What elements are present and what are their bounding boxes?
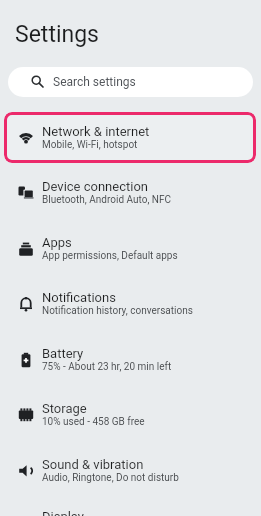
staticText: Audio, Ringtone, Do not disturb [42,472,179,484]
staticText: 75% - About 23 hr, 20 min left [42,361,172,373]
button[interactable]: Search settings [8,67,253,97]
staticText: Network & internet [42,124,150,139]
staticText: Apps [42,235,72,250]
button[interactable]: Notifications [0,278,261,329]
button[interactable]: Apps [0,223,261,274]
staticText: Settings [15,21,99,48]
staticText: Search settings [53,75,136,89]
button[interactable]: Storage [0,389,261,440]
staticText: Notifications [42,290,116,305]
button[interactable]: Sound & vibration [0,445,261,496]
staticText: Mobile, Wi-Fi, hotspot [42,139,138,151]
staticText: 10% used - 458 GB free [42,416,145,428]
staticText: Device connection [42,179,149,194]
button[interactable]: Display [0,501,261,516]
staticText: Bluetooth, Android Auto, NFC [42,194,171,206]
button[interactable] [4,112,256,163]
staticText: Display [42,509,84,516]
staticText: Sound & vibration [42,457,144,472]
staticText: App permissions, Default apps [42,250,178,262]
staticText: Storage [42,401,87,416]
button[interactable]: Device connection [0,167,261,218]
staticText: Battery [42,346,84,361]
button[interactable]: Battery [0,334,261,385]
staticText: Notification history, conversations [42,305,193,317]
